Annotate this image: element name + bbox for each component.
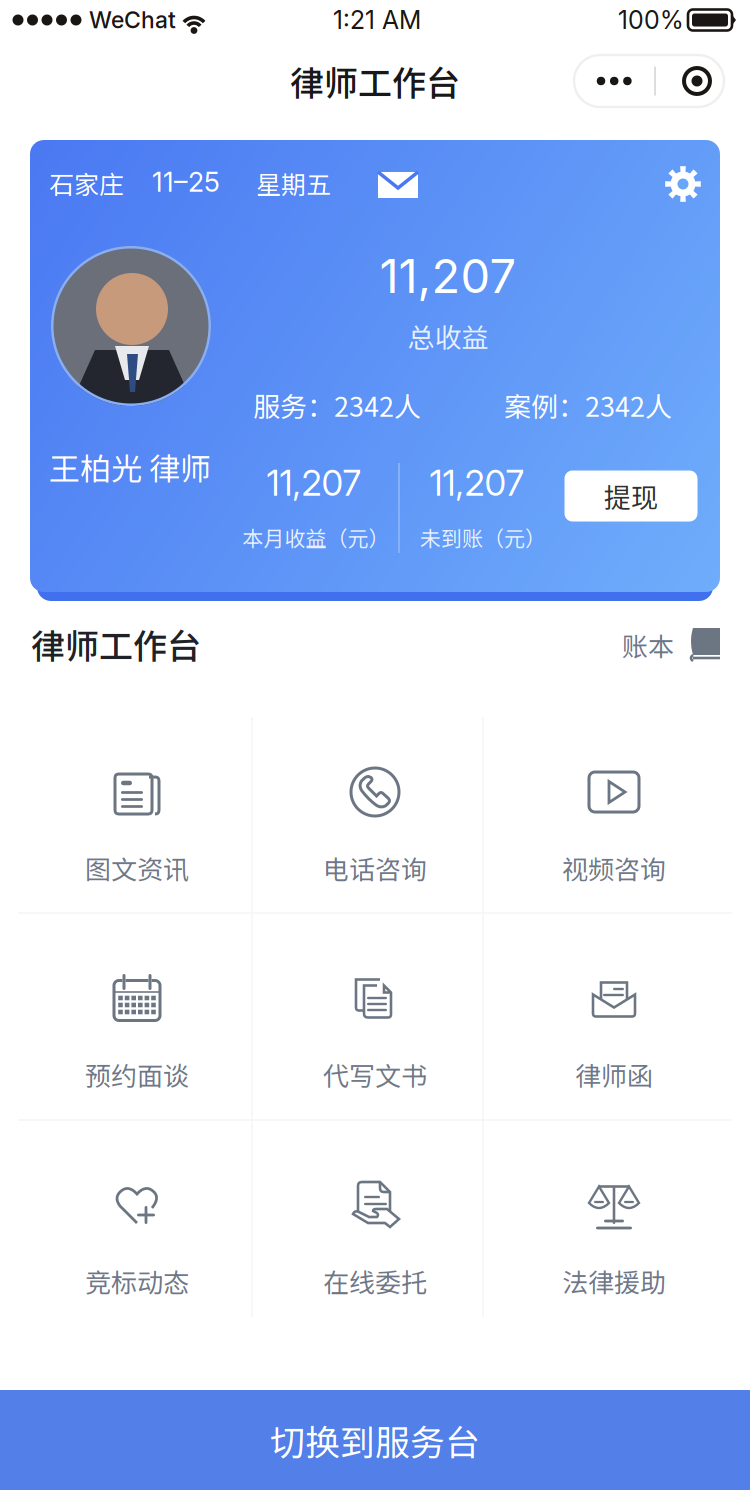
staticText: 切换到服务台: [270, 1415, 480, 1465]
button[interactable]: 竞标动态: [18, 1120, 256, 1326]
button[interactable]: 代写文书: [256, 913, 494, 1119]
staticText: 在线委托: [323, 1262, 427, 1300]
staticText: 律师函: [575, 1056, 653, 1093]
staticText: 11–25: [152, 166, 220, 198]
staticText: 账本: [622, 626, 674, 664]
staticText: 100%: [618, 5, 684, 35]
staticText: 未到账（元）: [420, 522, 546, 552]
staticText: 11,207: [429, 462, 524, 504]
button[interactable]: 律师函: [495, 913, 733, 1119]
staticText: 星期五: [256, 165, 331, 201]
staticText: 提现: [604, 476, 658, 516]
staticText: 代写文书: [323, 1056, 427, 1093]
staticText: 律师工作台: [290, 56, 460, 106]
staticText: 11,207: [266, 462, 361, 504]
staticText: 竞标动态: [85, 1262, 189, 1300]
button[interactable]: 提现: [564, 470, 697, 521]
button[interactable]: More options: [574, 55, 724, 107]
button[interactable]: 电话咨询: [256, 707, 494, 913]
button[interactable]: 法律援助: [495, 1120, 733, 1326]
button[interactable]: 预约面谈: [18, 913, 256, 1119]
button[interactable]: 账本: [570, 615, 720, 675]
staticText: 11,207: [379, 248, 516, 304]
staticText: 律师工作台: [31, 619, 201, 669]
staticText: 石家庄: [49, 165, 124, 201]
button[interactable]: 图文资讯: [18, 707, 256, 913]
staticText: 总收益: [407, 316, 488, 356]
staticText: 1:21 AM: [333, 5, 421, 35]
button[interactable]: 视频咨询: [495, 707, 733, 913]
button[interactable]: Settings: [665, 166, 701, 202]
staticText: 法律援助: [562, 1262, 666, 1300]
staticText: 图文资讯: [85, 849, 189, 887]
staticText: 服务：2342人: [253, 385, 421, 425]
button[interactable]: 切换到服务台: [0, 1390, 750, 1490]
staticText: 本月收益（元）: [242, 522, 389, 552]
staticText: 电话咨询: [323, 849, 427, 887]
staticText: 视频咨询: [562, 849, 666, 887]
staticText: 案例：2342人: [504, 385, 672, 425]
staticText: WeChat: [89, 6, 176, 34]
staticText: 预约面谈: [85, 1056, 189, 1093]
staticText: 王柏光 律师: [49, 445, 211, 489]
button[interactable]: 在线委托: [256, 1120, 494, 1326]
